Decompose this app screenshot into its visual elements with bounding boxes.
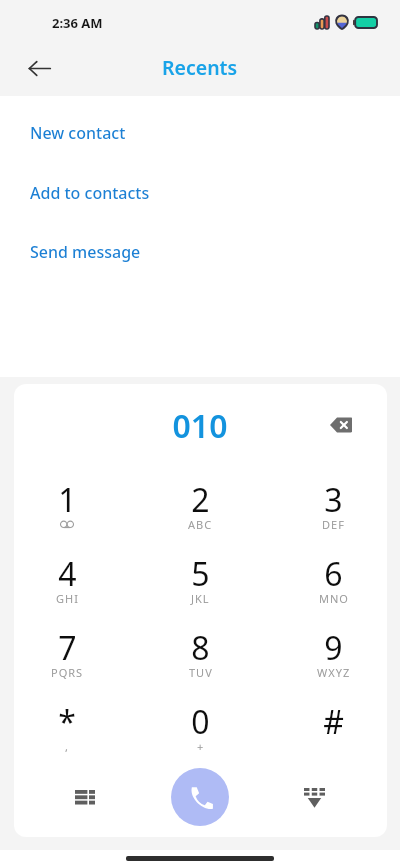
staticText: 1 [58, 478, 77, 522]
staticText: TUV [189, 665, 213, 680]
button[interactable]: 6 [267, 552, 400, 626]
staticText: DEF [322, 517, 345, 532]
staticText: + [197, 739, 205, 754]
staticText: 8 [191, 626, 210, 670]
staticText: , [65, 739, 69, 754]
button[interactable]: 9 [267, 626, 400, 700]
button[interactable]: New contact [0, 110, 400, 156]
staticText: 3 [324, 478, 343, 522]
staticText: 4 [58, 552, 77, 596]
staticText: WXYZ [317, 665, 351, 680]
staticText: 6 [324, 552, 343, 596]
staticText: 2 [191, 478, 210, 522]
button[interactable]: Send message [0, 229, 400, 275]
button[interactable]: 0 [134, 700, 267, 774]
staticText: Send message [30, 241, 141, 263]
staticText: 010 [0, 404, 400, 448]
staticText: * [58, 700, 76, 744]
staticText: 7 [58, 626, 77, 670]
button[interactable]: 1 [0, 478, 134, 552]
staticText: PQRS [51, 665, 84, 680]
staticText: Add to contacts [30, 182, 150, 204]
button[interactable]: 8 [134, 626, 267, 700]
button[interactable]: Call log [63, 776, 106, 819]
button[interactable]: # [267, 700, 400, 774]
staticText: ABC [188, 517, 213, 532]
button[interactable]: 3 [267, 478, 400, 552]
staticText: MNO [319, 591, 349, 606]
staticText: 9 [324, 626, 343, 670]
button[interactable]: 5 [134, 552, 267, 626]
button[interactable]: Backspace [320, 404, 362, 446]
staticText: 5 [191, 552, 210, 596]
staticText: GHI [56, 591, 79, 606]
button[interactable]: 4 [0, 552, 134, 626]
button[interactable]: Add to contacts [0, 170, 400, 216]
button[interactable]: Hide keypad [293, 776, 336, 819]
button[interactable]: Call [171, 768, 229, 826]
staticText: # [323, 700, 344, 744]
staticText: Recents [162, 54, 238, 81]
staticText: JKL [191, 591, 210, 606]
staticText: 0 [191, 700, 210, 744]
staticText: 2:36 AM [52, 14, 103, 32]
button[interactable]: 7 [0, 626, 134, 700]
button[interactable]: * [0, 700, 134, 774]
button[interactable]: 2 [134, 478, 267, 552]
button[interactable]: Back [18, 47, 60, 89]
staticText: New contact [30, 122, 126, 144]
